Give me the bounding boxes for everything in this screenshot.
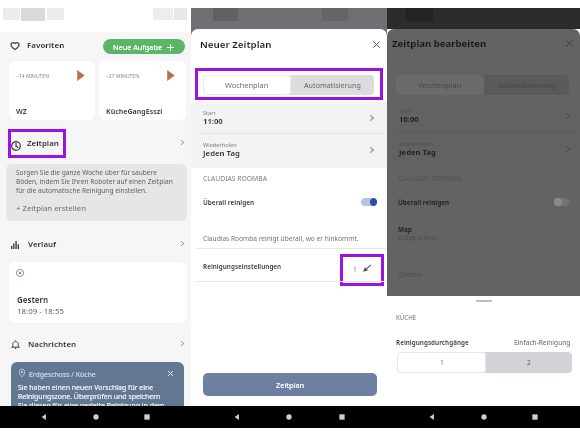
staticText: WZ xyxy=(16,107,27,117)
button[interactable]: Zeitplan xyxy=(0,128,191,158)
button[interactable]: Back xyxy=(230,410,244,424)
staticText: Reinigungsdurchgänge xyxy=(396,338,469,347)
staticText: Wiederholen xyxy=(399,140,433,148)
staticText: Sie haben einen neuen Vorschlag für eine… xyxy=(18,383,170,410)
button[interactable]: Nachrichten xyxy=(0,333,191,357)
staticText: Favoriten xyxy=(27,40,65,51)
staticText: Start xyxy=(399,107,412,115)
staticText: 2 xyxy=(527,358,531,367)
staticText: ~14 MINUTEN xyxy=(16,73,49,80)
staticText: KücheGangEsszi xyxy=(106,107,163,117)
button[interactable]: Back xyxy=(37,410,51,424)
button[interactable]: Home xyxy=(89,410,103,424)
button[interactable]: Favoriten xyxy=(0,31,191,59)
button[interactable]: Wiederholen xyxy=(191,137,387,167)
button[interactable]: Wochenplan xyxy=(203,75,291,95)
staticText: 18:09 - 18:55 xyxy=(17,306,64,317)
staticText: Verlauf xyxy=(28,239,57,250)
staticText: Automatisierung xyxy=(498,80,555,90)
staticText: 1 xyxy=(353,265,357,274)
staticText: Nachrichten xyxy=(28,339,77,350)
button[interactable]: Überall reinigen xyxy=(387,191,580,213)
button[interactable]: Neue Aufgabe xyxy=(103,39,185,54)
button[interactable]: Erdgeschoss / Küche xyxy=(11,362,184,412)
staticText: Neue Aufgabe xyxy=(113,42,163,52)
staticText: Neuer Zeitplan xyxy=(200,38,272,51)
button[interactable]: Home xyxy=(477,410,491,424)
staticText: Erdgeschoss / Küche xyxy=(29,370,96,379)
staticText: Überall reinigen xyxy=(398,198,450,207)
button[interactable]: Recents xyxy=(528,410,542,424)
staticText: Start xyxy=(203,109,216,117)
button[interactable]: Start xyxy=(387,103,580,133)
button[interactable]: ~27 MINUTEN xyxy=(99,61,186,120)
staticText: + Zeitplan erstellen xyxy=(16,203,86,214)
button[interactable]: Wochenplan xyxy=(396,75,484,95)
button[interactable]: Schließen xyxy=(371,39,382,50)
staticText: CLAUDIAS ROOMBA xyxy=(203,174,268,183)
staticText: Wochenplan xyxy=(225,80,269,90)
button[interactable]: 2 xyxy=(486,352,572,373)
staticText: Sorgen Sie die ganze Woche über für saub… xyxy=(16,168,178,195)
staticText: Jeden Tag xyxy=(399,147,436,157)
button[interactable]: Automatisierung xyxy=(291,75,374,95)
button[interactable]: + Zeitplan erstellen xyxy=(16,201,96,216)
staticText: KÜCHE xyxy=(396,313,417,321)
button[interactable]: ~14 MINUTEN xyxy=(9,61,95,120)
staticText: Map xyxy=(398,225,412,234)
staticText: Jeden Tag xyxy=(203,148,240,158)
button[interactable]: Recents xyxy=(140,410,154,424)
staticText: Wochenplan xyxy=(418,80,462,90)
button[interactable]: Recents xyxy=(335,410,349,424)
staticText: Zeitplan xyxy=(276,380,305,390)
staticText: Wiederholen xyxy=(203,141,237,149)
button[interactable]: Back xyxy=(425,410,439,424)
staticText: Automatisierung xyxy=(304,80,361,90)
button[interactable]: Zeitplan xyxy=(203,373,377,396)
button[interactable]: Gestern xyxy=(9,262,187,323)
button[interactable]: Verlauf xyxy=(0,233,191,257)
button[interactable]: Start xyxy=(191,105,387,135)
button[interactable]: Wiederholen xyxy=(387,136,580,166)
button[interactable]: Schließen xyxy=(166,369,175,378)
staticText: 1 xyxy=(440,358,444,367)
staticText: Einfach-Reinigung xyxy=(514,338,571,347)
staticText: 11:00 xyxy=(203,116,223,126)
staticText: CLAUDIAS ROOMBA xyxy=(398,174,463,183)
staticText: Zeitplan bearbeiten xyxy=(392,37,487,50)
staticText: Zeitplan xyxy=(27,138,59,149)
button[interactable]: Reinigungseinstellungen xyxy=(191,249,387,281)
staticText: Gestern xyxy=(17,295,49,306)
staticText: Claudias Roomba reinigt überall, wo er h… xyxy=(203,234,359,243)
button[interactable]: Automatisierung xyxy=(484,75,569,95)
staticText: Zimmer xyxy=(398,270,423,279)
button[interactable]: 1 xyxy=(397,352,486,373)
button[interactable]: Überall reinigen xyxy=(191,191,387,213)
staticText: Überall reinigen xyxy=(203,198,255,207)
button[interactable]: Schließen xyxy=(564,38,575,49)
staticText: Reinigungseinstellungen xyxy=(203,262,282,271)
button[interactable]: Home xyxy=(282,410,296,424)
staticText: 10:00 xyxy=(399,114,419,124)
staticText: Erdgeschoss xyxy=(398,233,438,242)
staticText: ~27 MINUTEN xyxy=(106,73,139,80)
